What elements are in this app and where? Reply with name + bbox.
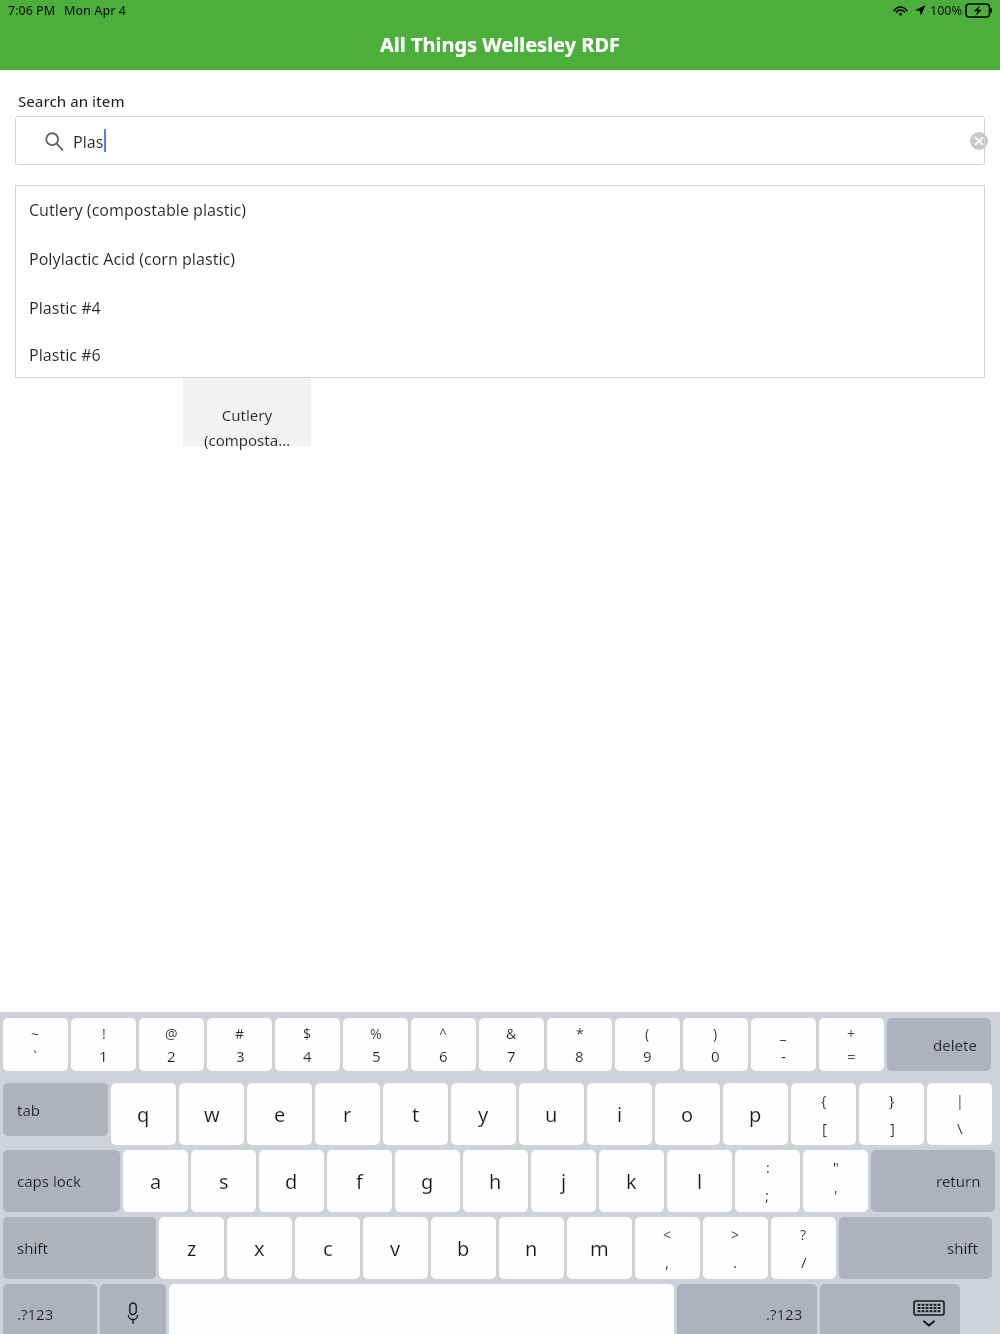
staticText: z [187, 1235, 197, 1262]
staticText: & [506, 1024, 517, 1043]
button[interactable]: return [871, 1150, 995, 1212]
button[interactable]: Clear search [970, 132, 988, 150]
button[interactable]: Plastic #6 [15, 332, 985, 378]
staticText: All Things Wellesley RDF [0, 31, 1000, 58]
button[interactable]: s [191, 1150, 256, 1212]
button[interactable]: x [227, 1217, 292, 1279]
button[interactable]: f [327, 1150, 392, 1212]
staticText: < [663, 1225, 672, 1244]
staticText: ^ [439, 1024, 448, 1043]
button[interactable]: ! [71, 1018, 136, 1071]
button[interactable]: u [519, 1083, 584, 1145]
button[interactable]: r [315, 1083, 380, 1145]
button[interactable]: ^ [411, 1018, 476, 1071]
staticText: h [489, 1168, 502, 1195]
button[interactable]: l [667, 1150, 732, 1212]
button[interactable]: Cutlery (compostable plastic) [15, 185, 985, 234]
staticText: Plastic #4 [29, 297, 101, 319]
staticText: j [561, 1168, 567, 1195]
staticText: , [665, 1252, 670, 1272]
staticText: 100% [930, 2, 963, 19]
staticText: 3 [236, 1046, 245, 1066]
button[interactable]: z [159, 1217, 224, 1279]
button[interactable]: + [819, 1018, 884, 1071]
staticText: q [137, 1101, 150, 1128]
button[interactable]: Dictate [100, 1284, 166, 1334]
button[interactable]: i [587, 1083, 652, 1145]
button[interactable]: } [859, 1083, 924, 1145]
staticText: 0 [711, 1046, 720, 1066]
button[interactable]: c [295, 1217, 360, 1279]
button[interactable]: shift [839, 1217, 992, 1279]
button[interactable]: caps lock [3, 1150, 120, 1212]
button[interactable]: k [599, 1150, 664, 1212]
button[interactable]: % [343, 1018, 408, 1071]
staticText: o [681, 1101, 694, 1128]
button[interactable]: ~ [3, 1018, 68, 1071]
button[interactable]: Plastic #4 [15, 283, 985, 332]
button[interactable]: ( [615, 1018, 680, 1071]
button[interactable]: | [927, 1083, 992, 1145]
staticText: shift [17, 1238, 48, 1258]
button[interactable]: Hide keyboard [820, 1284, 960, 1334]
staticText: d [285, 1168, 298, 1195]
staticText: = [847, 1046, 856, 1066]
button[interactable]: q [111, 1083, 176, 1145]
button[interactable]: h [463, 1150, 528, 1212]
staticText: .?123 [766, 1304, 803, 1324]
button[interactable]: " [803, 1150, 868, 1212]
button[interactable]: shift [3, 1217, 156, 1279]
staticText: + [847, 1024, 856, 1043]
button[interactable]: < [635, 1217, 700, 1279]
staticText: b [457, 1235, 470, 1262]
staticText: (composta… [183, 430, 311, 450]
button[interactable]: m [567, 1217, 632, 1279]
staticText: % [370, 1024, 382, 1043]
staticText: : [766, 1158, 770, 1177]
button[interactable]: d [259, 1150, 324, 1212]
button[interactable]: tab [3, 1083, 108, 1136]
staticText: * [576, 1024, 584, 1043]
staticText: ` [33, 1046, 38, 1066]
staticText: ) [713, 1024, 718, 1043]
button[interactable]: a [123, 1150, 188, 1212]
staticText: / [801, 1252, 807, 1272]
button[interactable]: { [791, 1083, 856, 1145]
button[interactable]: e [247, 1083, 312, 1145]
staticText: w [204, 1101, 220, 1128]
button[interactable]: # [207, 1018, 272, 1071]
button[interactable]: p [723, 1083, 788, 1145]
button[interactable]: ) [683, 1018, 748, 1071]
staticText: > [731, 1225, 740, 1244]
staticText: g [421, 1168, 434, 1195]
button[interactable]: $ [275, 1018, 340, 1071]
staticText: p [749, 1101, 762, 1128]
button[interactable]: Polylactic Acid (corn plastic) [15, 234, 985, 283]
button[interactable]: n [499, 1217, 564, 1279]
button[interactable]: y [451, 1083, 516, 1145]
button[interactable]: v [363, 1217, 428, 1279]
button[interactable]: : [735, 1150, 800, 1212]
button[interactable]: & [479, 1018, 544, 1071]
button[interactable]: @ [139, 1018, 204, 1071]
button[interactable]: j [531, 1150, 596, 1212]
button[interactable]: _ [751, 1018, 816, 1071]
button[interactable]: .?123 [3, 1284, 97, 1334]
button[interactable]: Plas [15, 116, 985, 165]
button[interactable]: t [383, 1083, 448, 1145]
button[interactable]: ? [771, 1217, 836, 1279]
button[interactable]: * [547, 1018, 612, 1071]
staticText: | [956, 1091, 964, 1110]
button[interactable]: .?123 [677, 1284, 817, 1334]
button[interactable]: o [655, 1083, 720, 1145]
staticText: Cutlery (compostable plastic) [29, 199, 247, 221]
staticText: return [936, 1171, 981, 1191]
staticText: k [626, 1168, 637, 1195]
staticText: i [617, 1101, 623, 1128]
button[interactable]: delete [887, 1018, 991, 1071]
button[interactable]: > [703, 1217, 768, 1279]
button[interactable]: b [431, 1217, 496, 1279]
button[interactable]: w [179, 1083, 244, 1145]
button[interactable]: g [395, 1150, 460, 1212]
